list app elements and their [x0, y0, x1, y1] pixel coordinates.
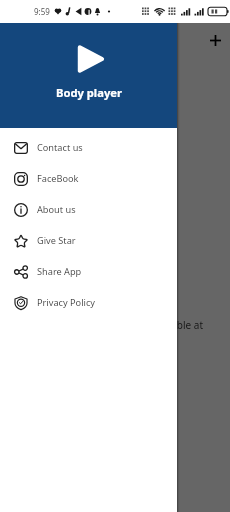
button[interactable]: Privacy Policy	[0, 287, 177, 318]
staticText: Share App	[37, 265, 82, 278]
button[interactable]: Contact us	[0, 132, 177, 163]
button[interactable]: About us	[0, 194, 177, 225]
staticText: Body player	[56, 85, 122, 100]
staticText: Available at	[149, 318, 204, 332]
button[interactable]: Share App	[0, 256, 177, 287]
staticText: Contact us	[37, 141, 83, 154]
staticText: FaceBook	[37, 172, 79, 185]
button[interactable]: FaceBook	[0, 163, 177, 194]
staticText: About us	[37, 203, 76, 216]
staticText: Privacy Policy	[37, 296, 95, 309]
button[interactable]: Add	[201, 26, 229, 54]
staticText: Give Star	[37, 234, 76, 247]
button[interactable]: Give Star	[0, 225, 177, 256]
staticText: 9:59	[34, 6, 50, 17]
